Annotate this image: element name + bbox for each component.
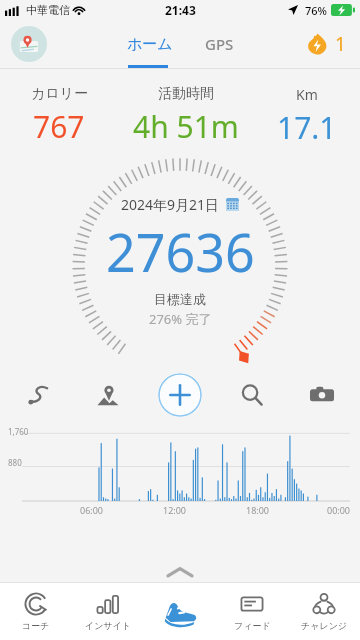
button[interactable]: Profile [11,26,47,62]
staticText: 21:43 [165,2,196,18]
staticText: 00:00 [327,504,351,516]
staticText: 活動時間 [158,85,214,103]
button[interactable]: Camera [302,375,342,415]
staticText: インサイト [85,620,132,631]
button[interactable]: Add [158,373,202,417]
staticText: コーチ [22,620,50,631]
button[interactable]: ホーム [117,29,183,60]
button[interactable]: GPS [195,28,244,60]
staticText: 76% [305,3,327,18]
staticText: フィード [234,620,271,631]
staticText: 767 [33,106,85,147]
button[interactable]: フィード [216,582,288,640]
staticText: 1,760 [8,426,29,437]
staticText: 18:00 [246,504,270,516]
staticText: 06:00 [80,504,104,516]
staticText: 目標達成 [154,291,206,307]
staticText: 276% 完了 [149,310,212,328]
button[interactable]: チャレンジ [288,582,360,640]
staticText: 2024年9月21日 [121,195,220,214]
staticText: Km [296,85,318,104]
staticText: チャレンジ [301,620,348,631]
button[interactable]: Activity [144,582,216,640]
staticText: 27636 [106,216,255,287]
button[interactable]: Places [88,375,128,415]
staticText: ホーム [127,35,173,54]
staticText: 17.1 [277,107,337,148]
button[interactable]: インサイト [72,582,144,640]
staticText: 中華電信 [26,3,70,17]
staticText: カロリー [31,85,88,103]
button[interactable]: コーチ [0,582,72,640]
button[interactable]: Km [254,85,360,148]
staticText: GPS [205,34,234,54]
button[interactable]: Streak [306,31,346,57]
button[interactable]: Route [18,375,58,415]
button[interactable]: Expand [0,562,360,582]
button[interactable]: 1,760 [0,421,360,519]
staticText: 4h 51m [133,106,239,147]
staticText: 1 [335,31,346,57]
staticText: 12:00 [163,504,187,516]
button[interactable]: Search [232,375,272,415]
button[interactable]: 2024年9月21日 [0,195,360,328]
staticText: 880 [8,457,22,468]
button[interactable]: 活動時間 [118,85,254,147]
button[interactable]: カロリー [0,85,118,147]
